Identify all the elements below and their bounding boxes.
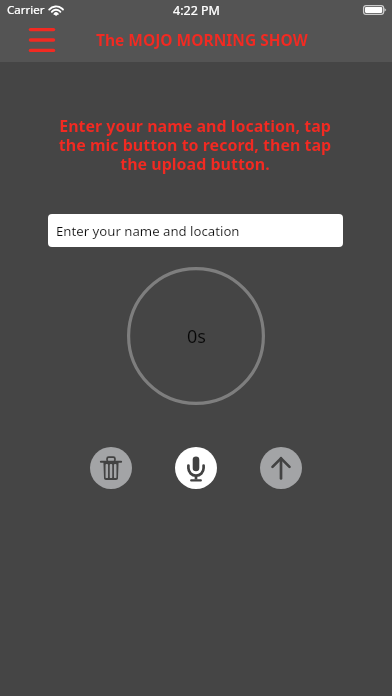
staticText: The MOJO MORNING SHOW <box>96 29 308 50</box>
staticText: 0s <box>187 324 206 349</box>
button[interactable]: Delete <box>90 447 132 489</box>
button[interactable]: Record <box>175 447 217 489</box>
button[interactable]: Upload <box>260 447 302 489</box>
button[interactable]: Enter your name and location <box>48 214 343 247</box>
staticText: 4:22 PM <box>173 2 220 19</box>
button[interactable]: Menu <box>22 22 61 56</box>
staticText: Carrier <box>7 2 45 18</box>
staticText: Enter your name and location, tap the mi… <box>53 115 337 175</box>
staticText: Enter your name and location <box>56 222 240 240</box>
